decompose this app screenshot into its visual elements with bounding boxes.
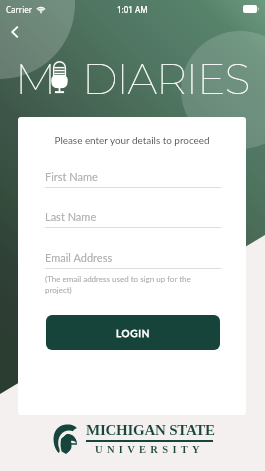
- button[interactable]: Last Name: [45, 210, 221, 228]
- staticText: DIARIES: [82, 52, 250, 104]
- staticText: Please enter your details to proceed: [18, 134, 246, 146]
- staticText: (The email address used to sign up for t…: [45, 274, 217, 295]
- staticText: LOGIN: [116, 327, 151, 339]
- button[interactable]: LOGIN: [46, 315, 220, 350]
- staticText: Carrier: [6, 4, 33, 15]
- staticText: UNIVERSITY: [86, 444, 213, 456]
- button[interactable]: Michigan State University: [52, 423, 217, 456]
- staticText: MICHIGAN STATE: [86, 422, 215, 439]
- staticText: First Name: [45, 170, 98, 183]
- button[interactable]: First Name: [45, 170, 221, 188]
- button[interactable]: Email Address: [45, 251, 221, 269]
- staticText: Email Address: [45, 251, 113, 264]
- staticText: M: [15, 52, 57, 104]
- staticText: 1:01 AM: [117, 4, 148, 15]
- button[interactable]: Back: [2, 19, 28, 45]
- staticText: Last Name: [45, 210, 97, 223]
